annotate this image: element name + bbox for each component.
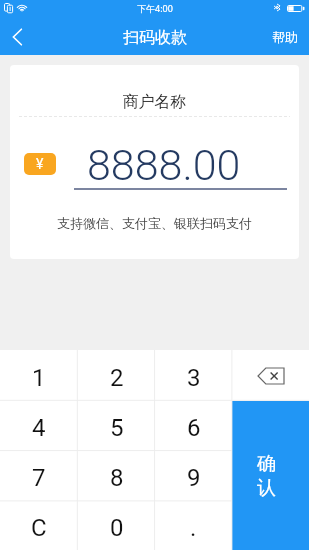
- button[interactable]: 确 认: [232, 401, 309, 550]
- button[interactable]: 3: [155, 350, 232, 400]
- button[interactable]: 2: [78, 350, 155, 400]
- staticText: 1: [32, 364, 46, 392]
- button[interactable]: 7: [0, 450, 78, 500]
- staticText: 9: [187, 464, 201, 492]
- button[interactable]: C: [0, 500, 78, 550]
- button[interactable]: 9: [155, 450, 232, 500]
- staticText: 3: [187, 364, 201, 392]
- staticText: 8: [110, 464, 124, 492]
- button[interactable]: .: [155, 500, 232, 550]
- button[interactable]: Back: [0, 18, 38, 55]
- button[interactable]: Backspace: [232, 350, 309, 401]
- staticText: 确 认: [257, 452, 276, 500]
- staticText: 6: [187, 414, 201, 442]
- staticText: 5: [110, 414, 124, 442]
- button[interactable]: 4: [0, 400, 78, 450]
- button[interactable]: 6: [155, 400, 232, 450]
- button[interactable]: 1: [0, 350, 78, 400]
- staticText: 扫码收款: [123, 28, 187, 48]
- button[interactable]: 帮助: [258, 18, 309, 55]
- staticText: 商户名称: [10, 92, 299, 112]
- staticText: 帮助: [272, 29, 298, 45]
- staticText: 4: [32, 414, 46, 442]
- staticText: 8888.00: [87, 140, 241, 186]
- staticText: ¥: [36, 156, 44, 172]
- button[interactable]: 5: [78, 400, 155, 450]
- staticText: .: [190, 514, 197, 542]
- staticText: C: [31, 514, 47, 542]
- staticText: 支持微信、支付宝、银联扫码支付: [10, 215, 299, 231]
- staticText: 0: [110, 514, 124, 542]
- staticText: 下午4:00: [137, 2, 173, 14]
- button[interactable]: 8: [78, 450, 155, 500]
- staticText: 2: [110, 364, 124, 392]
- staticText: 7: [32, 464, 46, 492]
- button[interactable]: 0: [78, 500, 155, 550]
